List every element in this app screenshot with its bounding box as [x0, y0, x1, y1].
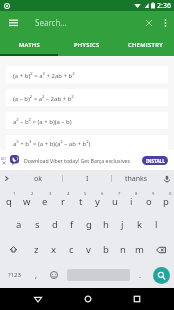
button[interactable]: ok: [13, 170, 62, 187]
button[interactable]: u: [106, 187, 123, 212]
staticText: o: [146, 195, 152, 208]
staticText: 1: [13, 191, 16, 197]
staticText: 8: [135, 191, 138, 197]
staticText: z: [34, 243, 39, 256]
button[interactable]: .: [132, 262, 149, 288]
button[interactable]: Open navigation drawer: [0, 11, 26, 34]
button[interactable]: c: [63, 237, 80, 262]
staticText: thanks: [125, 174, 148, 184]
button[interactable]: Home: [74, 288, 101, 310]
button[interactable]: l: [148, 212, 165, 237]
staticText: d: [52, 218, 58, 231]
button[interactable]: q: [0, 187, 18, 212]
button[interactable]: s: [28, 212, 46, 237]
staticText: u: [112, 195, 118, 208]
button[interactable]: d: [46, 212, 63, 237]
staticText: Search...: [35, 17, 67, 28]
button[interactable]: h: [97, 212, 114, 237]
staticText: k: [137, 218, 143, 231]
button[interactable]: e: [36, 187, 54, 212]
button[interactable]: ?123: [0, 262, 28, 288]
staticText: 5: [84, 191, 87, 197]
staticText: ?123: [8, 271, 21, 279]
staticText: (a + b)2 = a2 + 2ab + b2: [13, 71, 75, 79]
staticText: INSTALL: [146, 158, 165, 164]
button[interactable]: I: [63, 170, 111, 187]
staticText: PHYSICS: [74, 41, 100, 49]
button[interactable]: Back: [24, 288, 51, 310]
button[interactable]: a2 – b2 = (a + b)(a – b): [6, 112, 168, 129]
staticText: 6: [101, 191, 104, 197]
button[interactable]: thanks: [112, 170, 160, 187]
button[interactable]: f: [63, 212, 80, 237]
staticText: ,: [35, 269, 38, 280]
button[interactable]: Expand suggestions: [0, 170, 13, 187]
button[interactable]: Clear search: [139, 11, 159, 34]
button[interactable]: PHYSICS: [58, 34, 116, 56]
button[interactable]: t: [72, 187, 89, 212]
staticText: r: [61, 195, 65, 208]
button[interactable]: (a + b)2 = a2 + 2ab + b2: [6, 66, 168, 83]
button[interactable]: CHEMISTRY: [116, 34, 174, 56]
staticText: s: [35, 218, 40, 231]
button[interactable]: Backspace: [148, 237, 174, 262]
staticText: q: [6, 195, 12, 208]
staticText: I: [86, 174, 89, 184]
button[interactable]: m: [131, 237, 148, 262]
staticText: 2: [31, 191, 34, 197]
staticText: h: [103, 218, 109, 231]
staticText: e: [42, 195, 48, 208]
staticText: AD: [1, 156, 6, 161]
staticText: i: [130, 195, 133, 208]
staticText: a2 – b2 = (a + b)(a – b): [13, 117, 72, 125]
button[interactable]: z: [27, 237, 45, 262]
button[interactable]: r: [54, 187, 72, 212]
button[interactable]: a3 + b3 = (a + b)(a2 – ab + b2): [6, 135, 168, 150]
button[interactable]: v: [80, 237, 97, 262]
staticText: l: [155, 218, 158, 231]
staticText: (a – b)2 = a2 – 2ab + b2: [13, 94, 74, 102]
button[interactable]: MATHS: [0, 34, 58, 56]
button[interactable]: INSTALL: [142, 156, 168, 165]
button[interactable]: i: [123, 187, 140, 212]
button[interactable]: Recent apps: [123, 288, 150, 310]
staticText: x: [51, 243, 57, 256]
staticText: a3 + b3 = (a + b)(a2 – ab + b2): [13, 139, 91, 147]
button[interactable]: Space: [64, 262, 132, 288]
staticText: y: [95, 195, 100, 208]
staticText: m: [135, 243, 144, 256]
button[interactable]: w: [18, 187, 36, 212]
staticText: b: [103, 243, 109, 256]
button[interactable]: Shift: [0, 237, 27, 262]
button[interactable]: AD: [0, 150, 174, 170]
button[interactable]: a: [10, 212, 28, 237]
staticText: 0: [169, 191, 172, 197]
button[interactable]: k: [131, 212, 148, 237]
button[interactable]: Search: [149, 262, 174, 288]
button[interactable]: Voice input: [160, 170, 174, 187]
staticText: MATHS: [19, 41, 40, 49]
button[interactable]: ,: [28, 262, 44, 288]
button[interactable]: b: [97, 237, 114, 262]
staticText: t: [79, 195, 83, 208]
staticText: p: [163, 195, 169, 208]
button[interactable]: n: [114, 237, 131, 262]
button[interactable]: y: [89, 187, 106, 212]
staticText: 3: [49, 191, 52, 197]
button[interactable]: Emoji: [44, 262, 64, 288]
staticText: v: [86, 243, 91, 256]
button[interactable]: x: [45, 237, 63, 262]
button[interactable]: (a – b)2 = a2 – 2ab + b2: [6, 89, 168, 106]
staticText: Download Viber today! Get Barça exclusiv…: [24, 157, 130, 164]
staticText: a: [16, 218, 22, 231]
button[interactable]: g: [80, 212, 97, 237]
staticText: CHEMISTRY: [128, 41, 163, 49]
staticText: j: [121, 218, 124, 231]
button[interactable]: o: [140, 187, 157, 212]
button[interactable]: j: [114, 212, 131, 237]
staticText: 2:36: [157, 1, 171, 11]
button[interactable]: p: [157, 187, 174, 212]
staticText: c: [69, 243, 74, 256]
staticText: n: [120, 243, 126, 256]
button[interactable]: More options: [159, 11, 172, 34]
